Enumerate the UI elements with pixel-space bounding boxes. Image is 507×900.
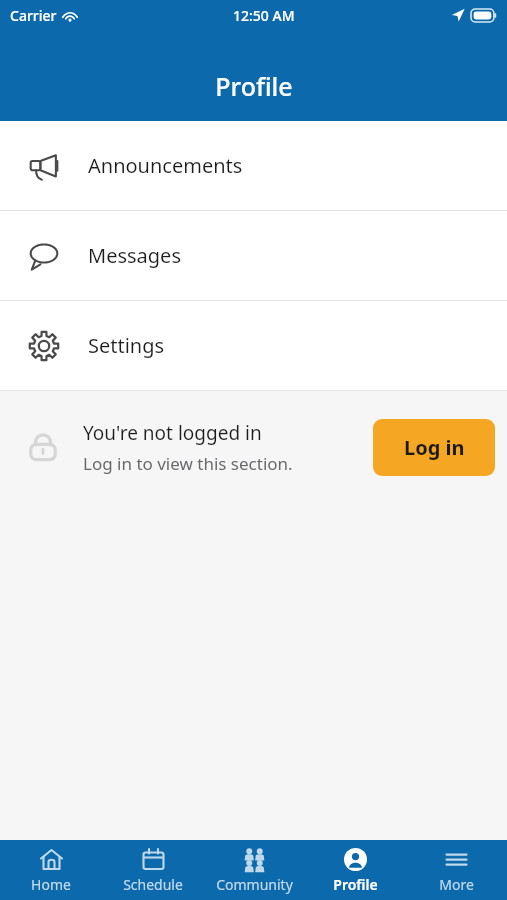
staticText: Messages [88,242,181,269]
staticText: Log in [404,434,465,461]
button[interactable]: Home [0,840,102,900]
staticText: Profile [333,875,378,894]
staticText: You're not logged in [83,420,262,446]
button[interactable]: Profile [305,840,406,900]
button[interactable]: Messages [0,211,507,300]
staticText: Carrier [10,6,57,25]
button[interactable]: More [406,840,507,900]
staticText: Home [31,875,71,894]
button[interactable]: Settings [0,301,507,390]
staticText: Schedule [123,875,183,894]
button[interactable]: Schedule [102,840,204,900]
staticText: Log in to view this section. [83,452,293,475]
button[interactable]: Log in [373,419,495,476]
staticText: Community [216,875,293,894]
staticText: Profile [215,69,293,103]
staticText: More [439,875,474,894]
button[interactable]: Announcements [0,121,507,210]
button[interactable]: Community [204,840,305,900]
staticText: Announcements [88,152,243,179]
staticText: Settings [88,332,165,359]
staticText: 12:50 AM [233,6,295,25]
